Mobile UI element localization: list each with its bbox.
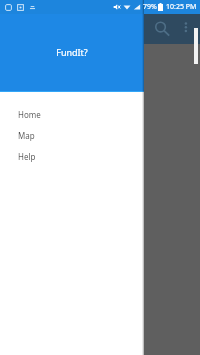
button[interactable]: Search	[150, 17, 174, 41]
button[interactable]: Home	[0, 104, 144, 125]
staticText: 79%	[143, 2, 157, 12]
button[interactable]: Map	[0, 125, 144, 146]
staticText: Home	[18, 109, 41, 120]
staticText: Help	[18, 151, 36, 162]
staticText: FundIt?	[56, 46, 88, 58]
staticText: 10:25 PM	[166, 2, 197, 12]
button[interactable]: Help	[0, 146, 144, 167]
staticText: Map	[18, 130, 35, 141]
button[interactable]: More options	[176, 17, 198, 39]
